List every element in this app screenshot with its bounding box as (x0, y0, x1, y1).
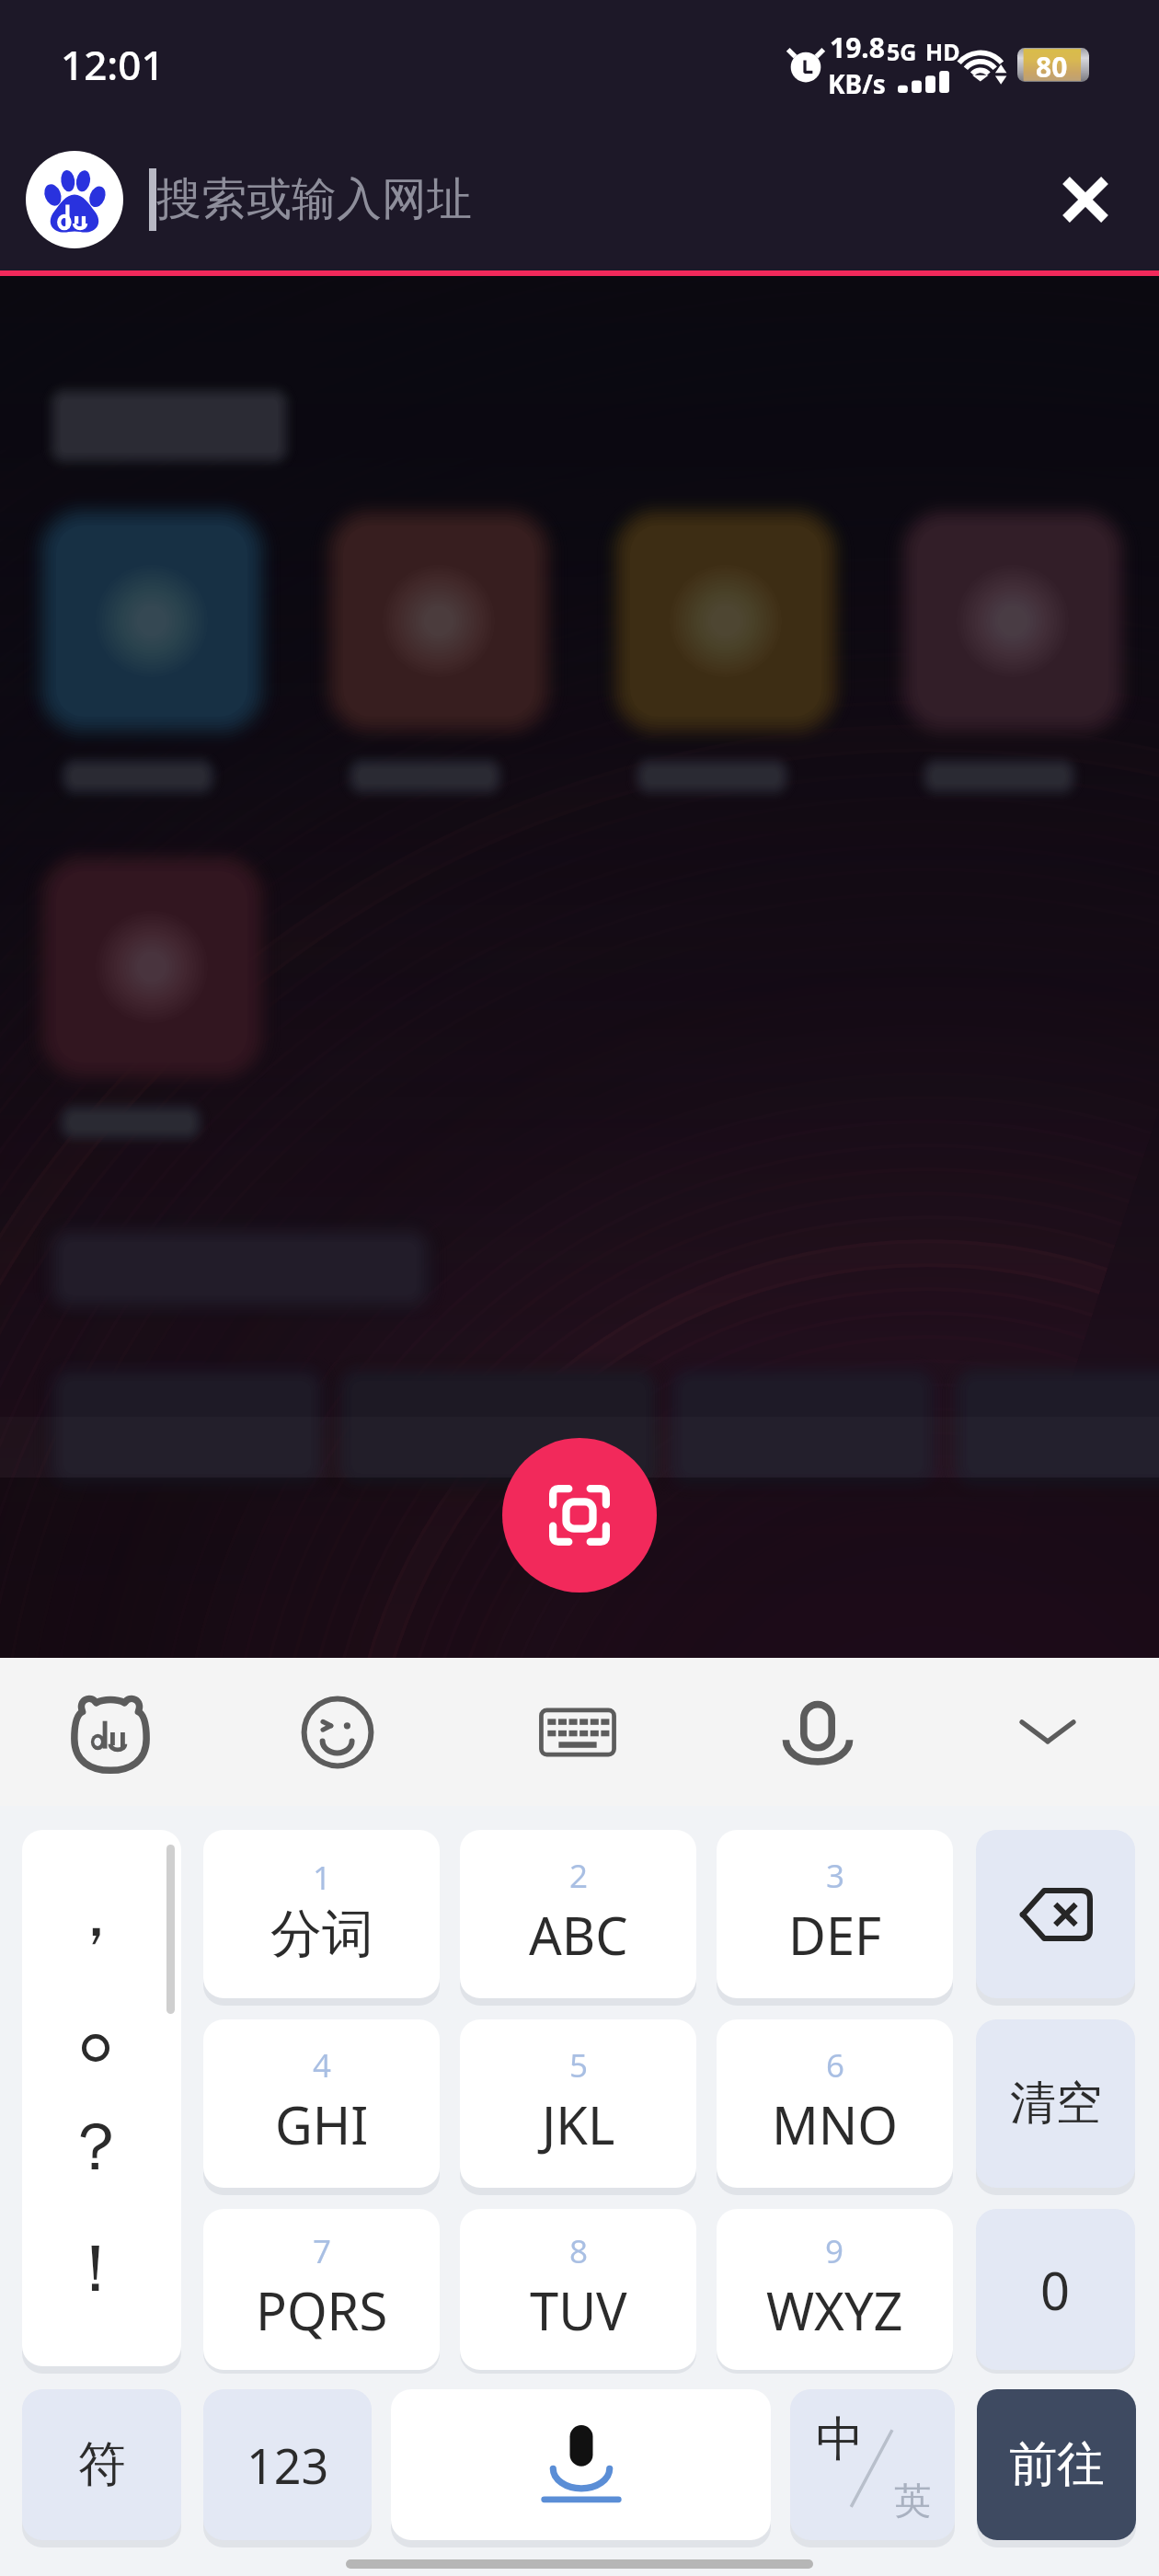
staticText: 中 (816, 2409, 864, 2470)
staticText: 6 (826, 2043, 845, 2087)
button[interactable]: Scan QR code (502, 1438, 657, 1593)
button[interactable]: Space, voice input (391, 2389, 771, 2540)
staticText: 分词 (270, 1902, 373, 1967)
staticText: 搜索或输入网址 (156, 171, 472, 228)
staticText: 1 (313, 1856, 332, 1900)
button[interactable]: Baidu (26, 151, 123, 248)
button[interactable]: 2 (460, 1830, 696, 1998)
button[interactable]: Backspace (976, 1830, 1135, 1998)
staticText: 19.8 (830, 29, 885, 66)
button[interactable]: Hide keyboard (983, 1668, 1112, 1797)
staticText: DEF (788, 1900, 882, 1970)
staticText: GHI (275, 2089, 369, 2159)
staticText: 9 (825, 2229, 844, 2273)
staticText: 123 (247, 2432, 329, 2498)
staticText: 5 (569, 2043, 589, 2087)
staticText: ABC (529, 1900, 628, 1970)
button[interactable]: 4 (203, 2019, 440, 2188)
button[interactable]: 前往 (977, 2389, 1136, 2540)
button[interactable]: 0 (976, 2209, 1135, 2370)
staticText: 符 (78, 2434, 126, 2495)
staticText: HD (925, 36, 960, 67)
button[interactable]: 8 (460, 2209, 696, 2370)
staticText: 3 (826, 1854, 845, 1898)
button[interactable]: Baidu input method (46, 1668, 175, 1797)
staticText: KB/s (828, 66, 886, 101)
button[interactable]: 5 (460, 2019, 696, 2188)
staticText: 4 (313, 2043, 332, 2087)
staticText: 2 (569, 1854, 589, 1898)
staticText: 7 (313, 2229, 332, 2273)
button[interactable]: 9 (717, 2209, 953, 2370)
staticText: 0 (1040, 2255, 1071, 2325)
button[interactable]: Voice input (753, 1668, 882, 1797)
staticText: MNO (772, 2089, 899, 2159)
button[interactable]: 7 (203, 2209, 440, 2370)
staticText: 清空 (1010, 2075, 1102, 2133)
staticText: ！ (63, 2227, 129, 2311)
staticText: TUV (530, 2275, 627, 2345)
button[interactable]: 清空 (976, 2019, 1135, 2188)
staticText: JKL (542, 2089, 615, 2159)
staticText: WXYZ (766, 2275, 903, 2345)
button[interactable]: Punctuation (22, 1830, 181, 2366)
staticText: 英 (894, 2478, 931, 2524)
button[interactable]: 符 (22, 2389, 181, 2540)
staticText: ， (63, 1872, 129, 1956)
staticText: ？ (63, 2106, 129, 2190)
button[interactable]: Switch Chinese English (790, 2389, 955, 2540)
button[interactable]: 123 (203, 2389, 372, 2540)
button[interactable]: Emoji (273, 1668, 402, 1797)
button[interactable]: Clear (1030, 144, 1141, 255)
staticText: 前往 (1009, 2434, 1105, 2495)
staticText: 8 (569, 2229, 589, 2273)
staticText: 80 (1036, 48, 1068, 82)
button[interactable]: Keyboard layout (513, 1668, 642, 1797)
button[interactable]: 3 (717, 1830, 953, 1998)
staticText: 12:01 (61, 37, 165, 92)
button[interactable]: 6 (717, 2019, 953, 2188)
staticText: PQRS (256, 2275, 388, 2345)
staticText: 5G (887, 36, 917, 67)
button[interactable]: 1 (203, 1830, 440, 1998)
